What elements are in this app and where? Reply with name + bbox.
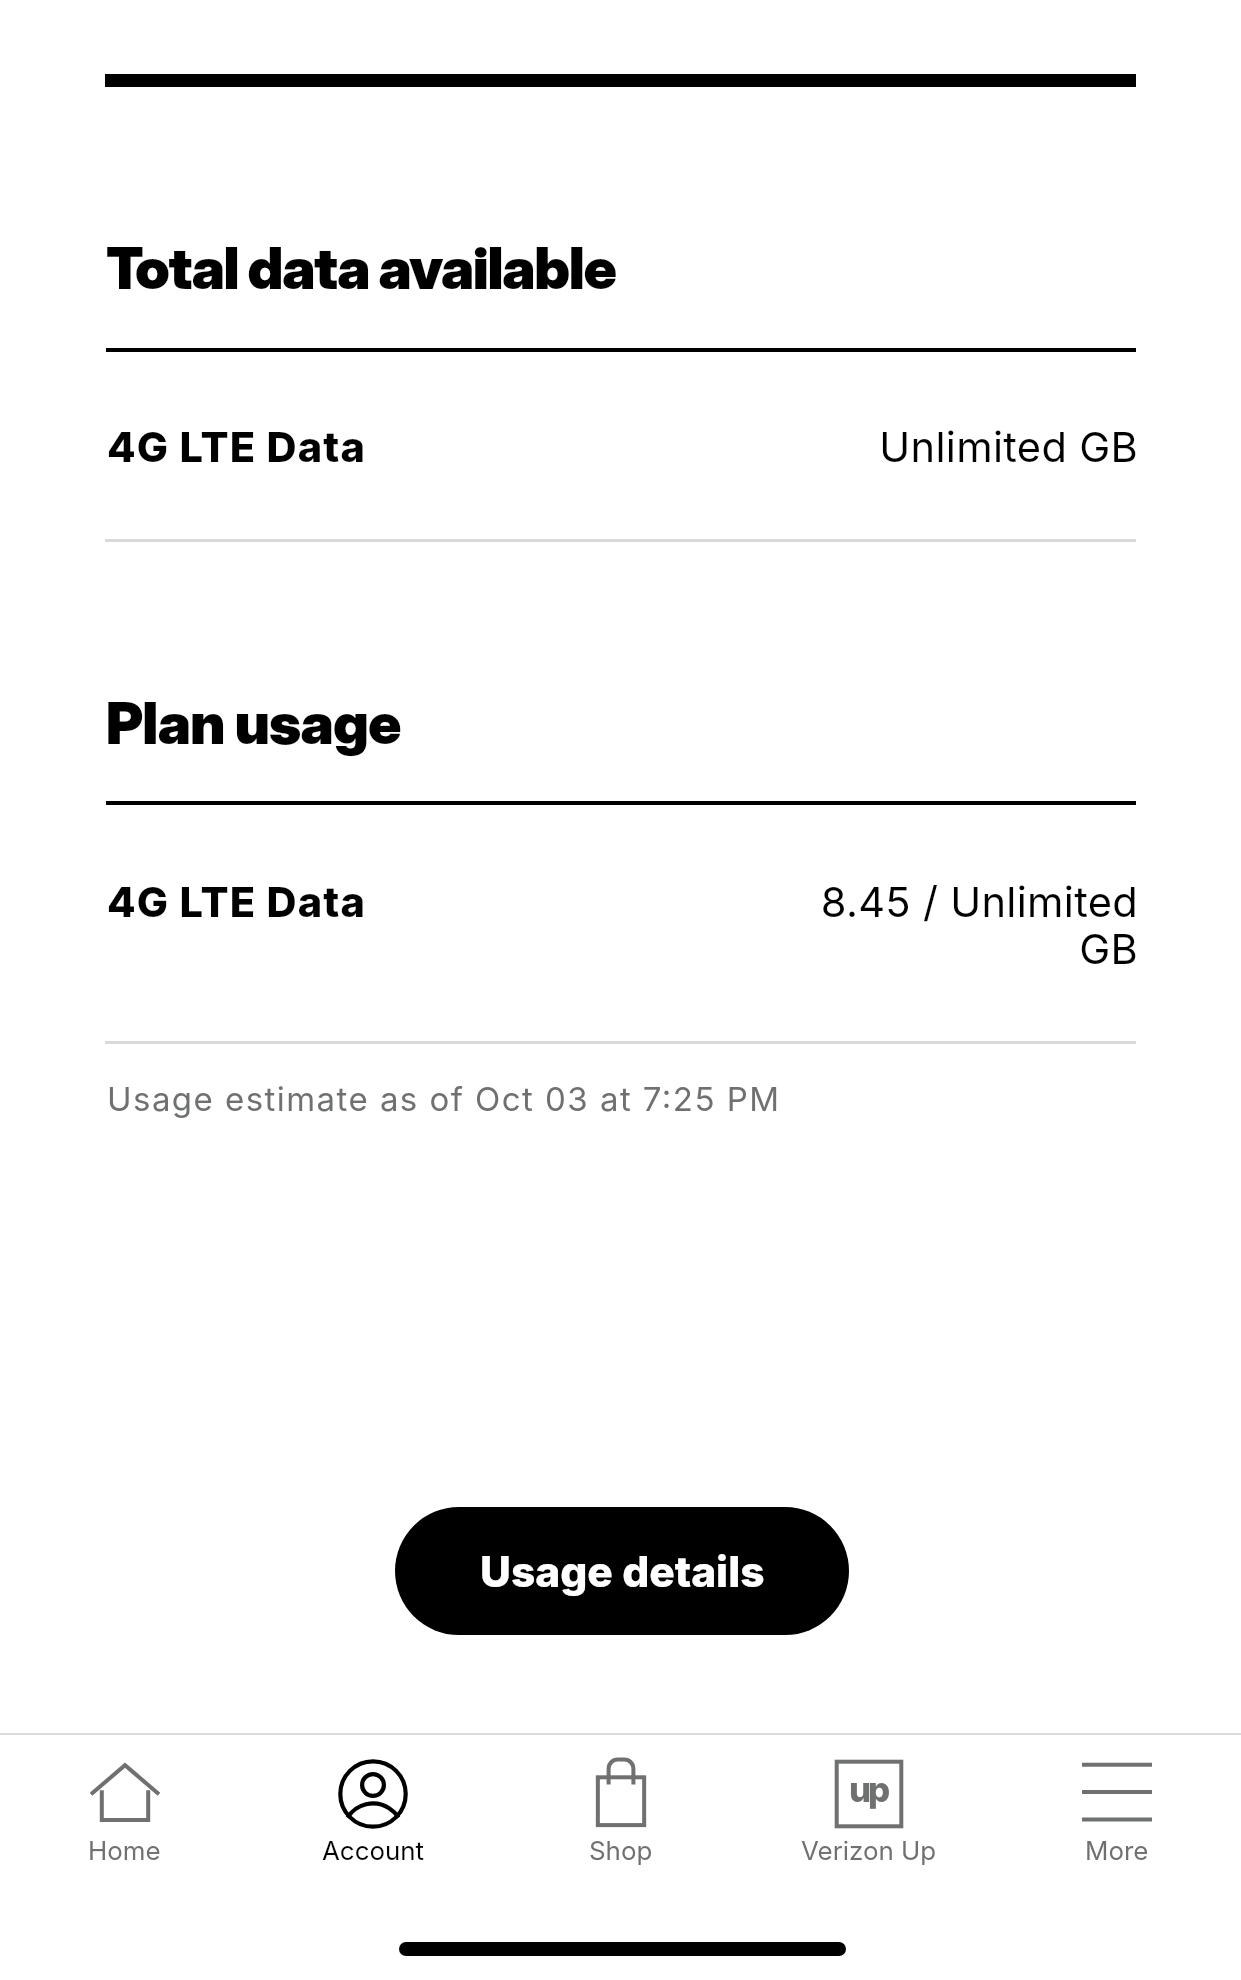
staticText: Plan usage — [106, 688, 401, 757]
staticText: Verizon Up — [801, 1835, 937, 1866]
other: More — [1081, 1758, 1153, 1830]
staticText: 4G LTE Data — [107, 877, 367, 927]
other: Home — [89, 1758, 161, 1822]
staticText: Usage details — [480, 1546, 765, 1597]
staticText: 8.45 / Unlimited GB — [536, 877, 1138, 974]
button[interactable]: Usage details — [395, 1507, 849, 1635]
staticText: Shop — [589, 1835, 653, 1866]
staticText: Total data available — [106, 233, 616, 302]
button[interactable]: Home — [0, 1740, 249, 1880]
staticText: Account — [322, 1835, 425, 1866]
button[interactable]: More — [993, 1740, 1241, 1880]
other: Verizon Up — [833, 1758, 905, 1830]
staticText: Home — [88, 1835, 161, 1866]
staticText: Usage estimate as of Oct 03 at 7:25 PM — [107, 1079, 781, 1119]
other: Account — [337, 1758, 409, 1830]
other: Shop — [585, 1758, 657, 1830]
staticText: 4G LTE Data — [107, 422, 367, 472]
button[interactable]: Shop — [497, 1740, 745, 1880]
button[interactable]: Account — [249, 1740, 497, 1880]
staticText: up — [849, 1768, 887, 1810]
staticText: More — [1085, 1835, 1149, 1866]
staticText: Unlimited GB — [536, 422, 1138, 472]
button[interactable]: Verizon Up — [745, 1740, 993, 1880]
